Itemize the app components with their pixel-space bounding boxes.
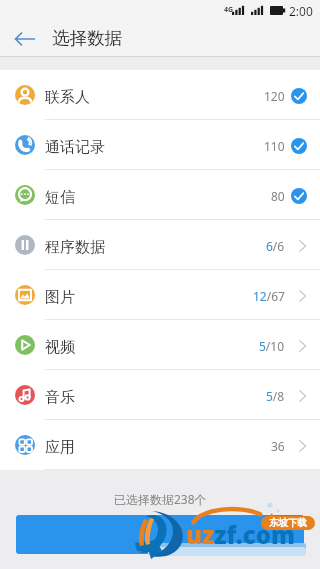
staticText: 80	[271, 188, 285, 204]
staticText: 联系人	[45, 88, 90, 107]
staticText: uzzf.com	[186, 518, 296, 551]
staticText: 选择数据	[52, 27, 122, 49]
staticText: 36	[271, 438, 285, 454]
staticText: 120	[264, 88, 285, 104]
staticText: 图片	[45, 288, 75, 307]
staticText: 5/10	[259, 338, 285, 354]
button[interactable]: 确定	[16, 515, 304, 554]
staticText: 音乐	[45, 388, 75, 407]
staticText: 12/67	[253, 288, 285, 304]
staticText: 2:00	[289, 3, 313, 19]
button[interactable]: 联系人	[0, 70, 320, 120]
button[interactable]: 音乐	[0, 370, 320, 420]
button[interactable]: 应用	[0, 420, 320, 470]
staticText: 通话记录	[45, 138, 105, 157]
staticText: 4G	[224, 5, 234, 15]
staticText: 程序数据	[45, 238, 105, 257]
staticText: 应用	[45, 438, 75, 457]
staticText: 视频	[45, 338, 75, 357]
button[interactable]: 程序数据	[0, 220, 320, 270]
button[interactable]: 通话记录	[0, 120, 320, 170]
staticText: 110	[264, 138, 285, 154]
staticText: 短信	[45, 188, 75, 207]
button[interactable]: 短信	[0, 170, 320, 220]
staticText: 已选择数据238个	[114, 491, 207, 507]
button[interactable]: 视频	[0, 320, 320, 370]
staticText: 5/8	[266, 388, 285, 404]
staticText: 6/6	[266, 238, 285, 254]
button[interactable]: 图片	[0, 270, 320, 320]
staticText: 东坡下载	[269, 517, 307, 529]
button[interactable]: 返回	[0, 20, 50, 57]
